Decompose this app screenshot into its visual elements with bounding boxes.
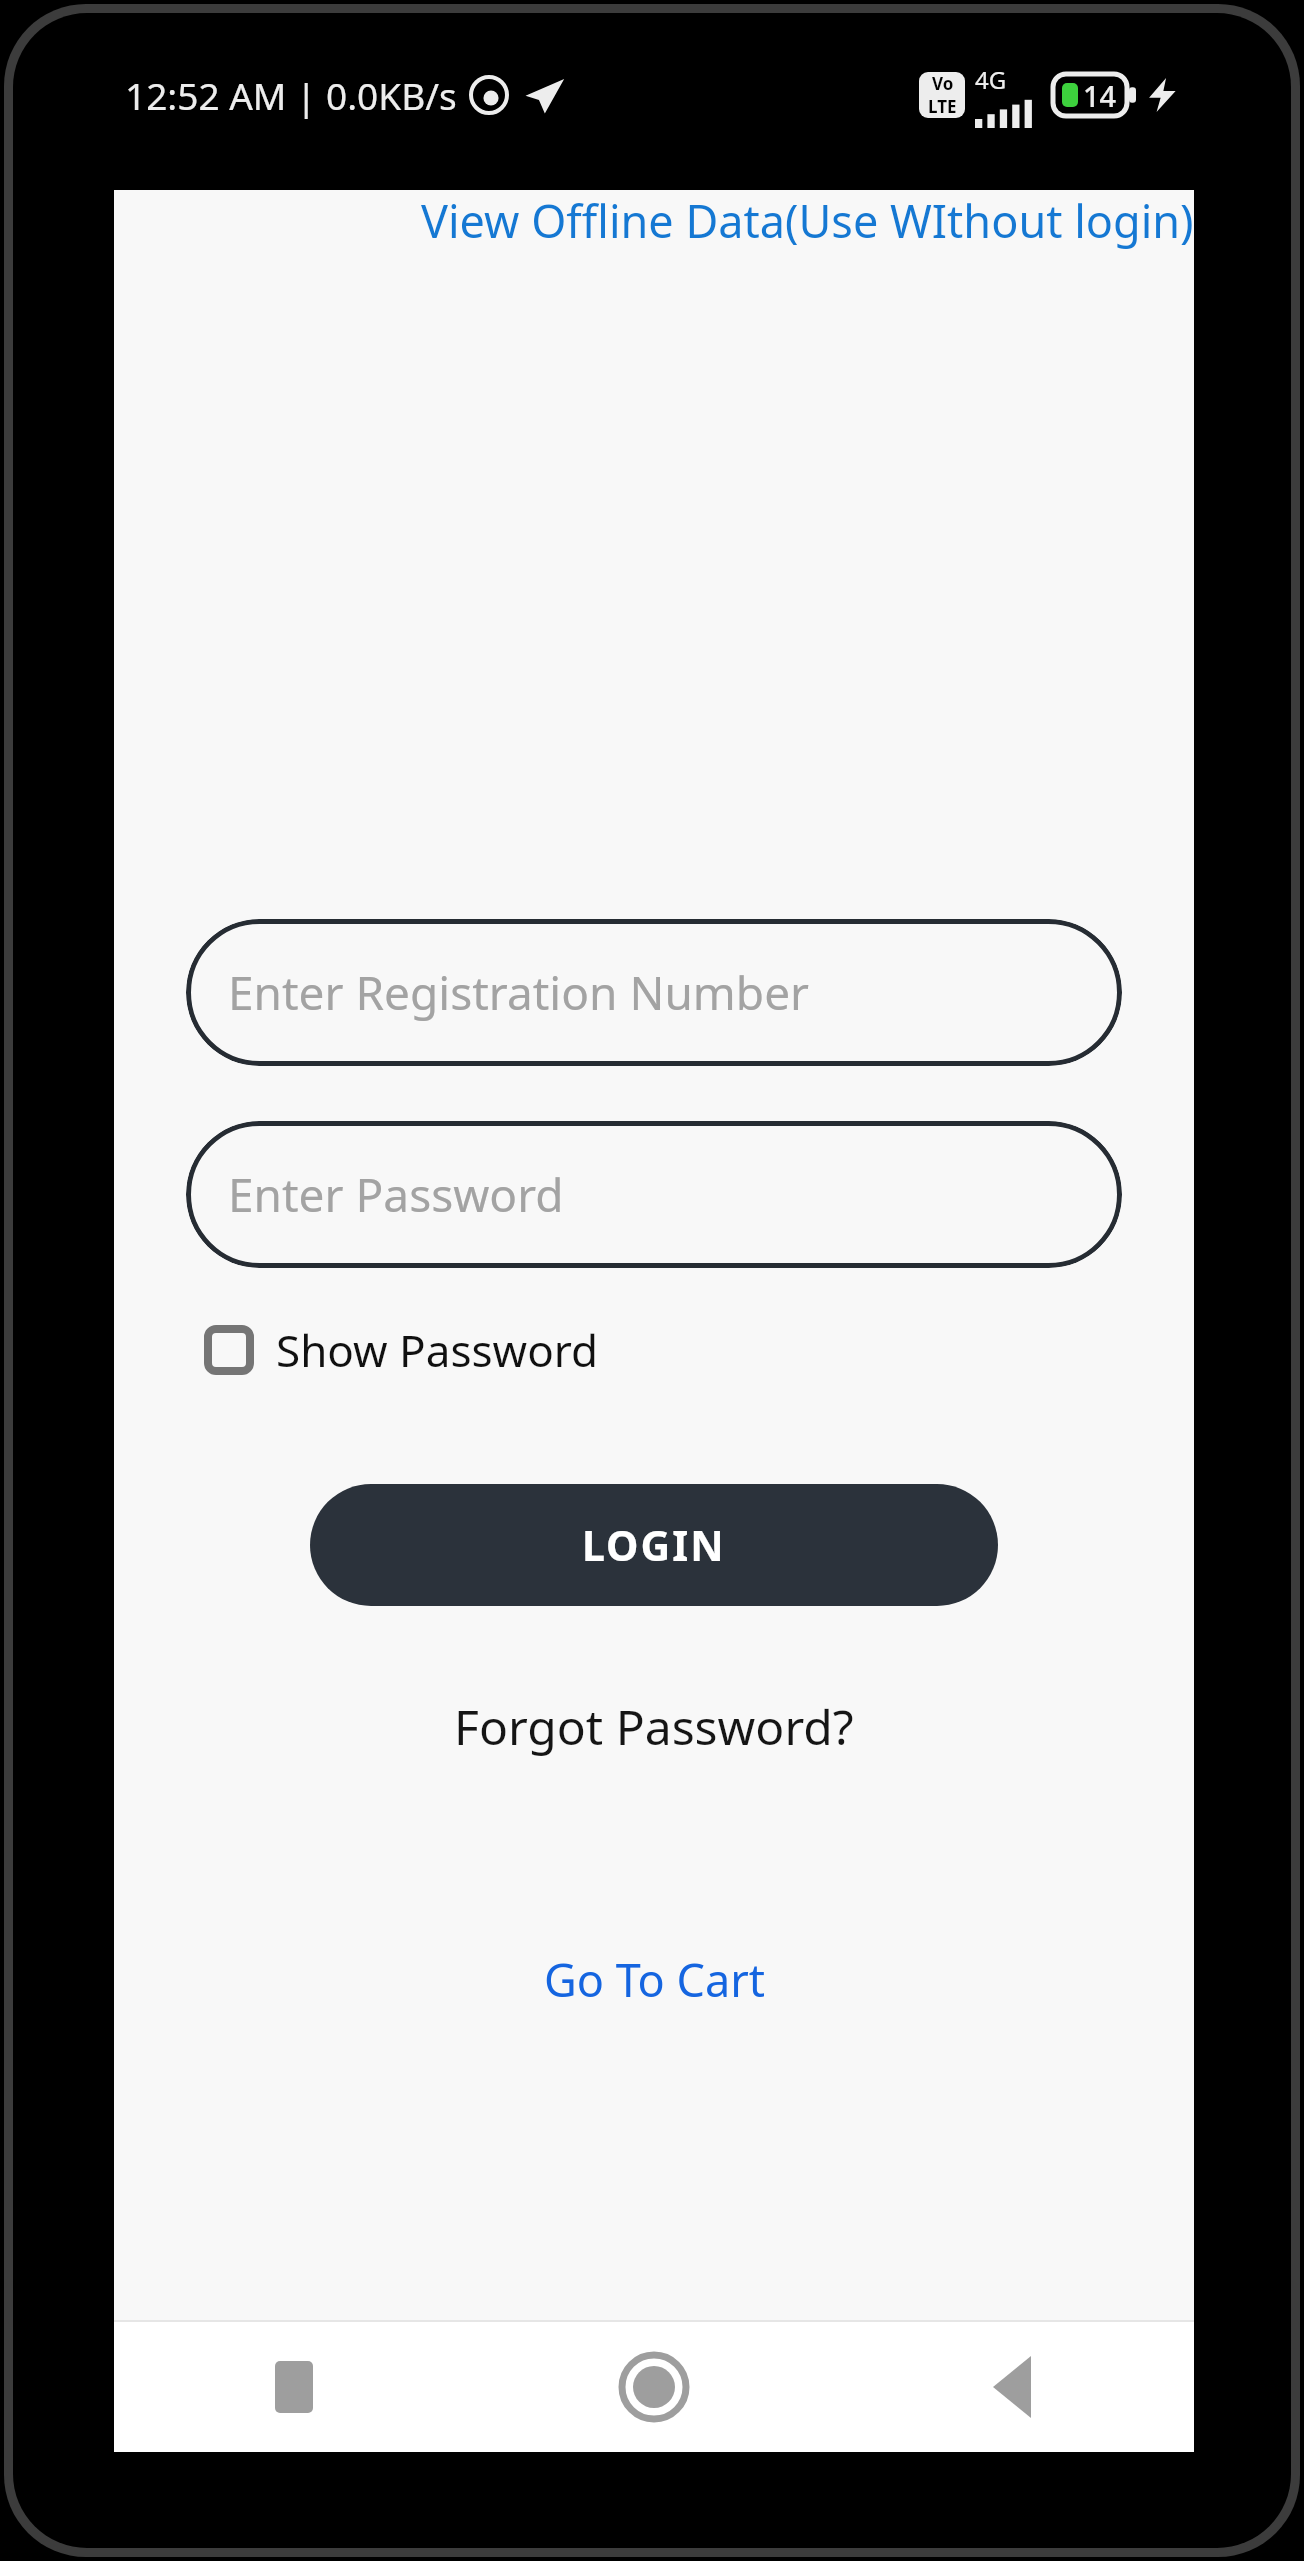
- staticText: 12:52 AM | 0.0KB/s: [125, 70, 457, 120]
- staticText: Enter Password: [228, 1163, 564, 1226]
- button[interactable]: Forgot Password?: [428, 1684, 880, 1769]
- staticText: Show Password: [276, 1320, 599, 1380]
- staticText: Enter Registration Number: [228, 961, 810, 1024]
- staticText: LOGIN: [582, 1517, 726, 1573]
- button[interactable]: Recent apps: [114, 2322, 474, 2452]
- staticText: LTE: [928, 95, 957, 118]
- staticText: View Offline Data(Use WIthout login): [421, 190, 1194, 251]
- button[interactable]: Back: [834, 2322, 1194, 2452]
- staticText: 14: [1083, 76, 1117, 115]
- staticText: Vo: [932, 72, 954, 95]
- button[interactable]: Home: [474, 2322, 834, 2452]
- staticText: 4G: [975, 63, 1007, 96]
- button[interactable]: Go To Cart: [518, 1939, 791, 2020]
- button[interactable]: Show Password: [204, 1316, 615, 1384]
- staticText: Go To Cart: [544, 1949, 765, 2010]
- button[interactable]: LOGIN: [310, 1484, 998, 1606]
- staticText: Forgot Password?: [454, 1694, 854, 1759]
- button[interactable]: Enter Registration Number: [186, 919, 1122, 1066]
- button[interactable]: Enter Password: [186, 1121, 1122, 1268]
- button[interactable]: View Offline Data(Use WIthout login): [114, 190, 1194, 251]
